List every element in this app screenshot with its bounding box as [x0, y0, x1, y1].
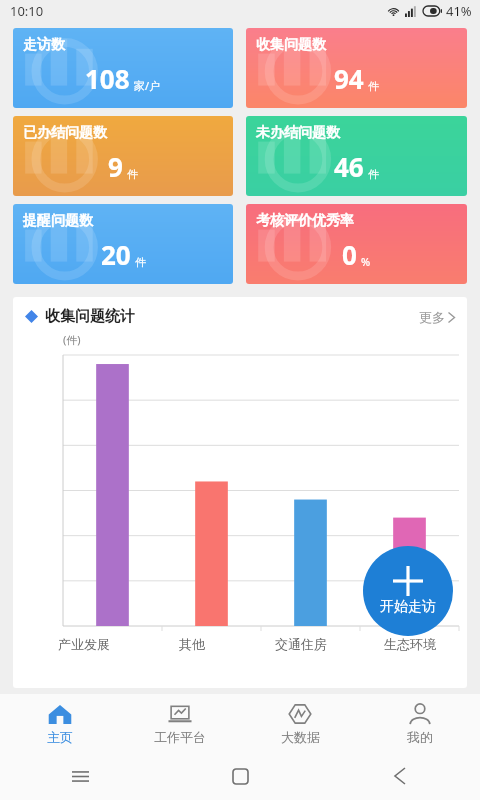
staticText: 产业发展	[58, 636, 110, 652]
staticText: 走访数	[23, 36, 65, 54]
button[interactable]: 我的	[360, 694, 480, 752]
staticText: 46	[334, 149, 364, 184]
staticText: 开始走访	[380, 598, 436, 616]
button[interactable]: Menu	[0, 752, 160, 800]
button[interactable]: 未办结问题数	[246, 116, 467, 196]
button[interactable]: 走访数	[13, 28, 233, 108]
staticText: 0	[342, 237, 357, 272]
staticText: 大数据	[281, 729, 320, 745]
staticText: 10:10	[10, 2, 44, 20]
button[interactable]: 提醒问题数	[13, 204, 233, 284]
staticText: 件	[368, 79, 379, 93]
button[interactable]: Home	[160, 752, 320, 800]
staticText: 提醒问题数	[23, 212, 93, 230]
staticText: 件	[368, 167, 379, 181]
button[interactable]: 开始走访	[363, 546, 453, 636]
staticText: 收集问题数	[256, 36, 326, 54]
staticText: 考核评价优秀率	[256, 212, 354, 230]
staticText: 生态环境	[384, 636, 436, 652]
staticText: (件)	[63, 332, 81, 347]
button[interactable]: 已办结问题数	[13, 116, 233, 196]
staticText: 家/户	[134, 78, 161, 93]
button[interactable]: 收集问题数	[246, 28, 467, 108]
staticText: 更多	[419, 309, 445, 325]
staticText: 交通住房	[275, 636, 327, 652]
button[interactable]: Back	[320, 752, 480, 800]
staticText: 20	[101, 237, 131, 272]
staticText: 41%	[446, 2, 472, 20]
button[interactable]: 主页	[0, 694, 120, 752]
staticText: 收集问题统计	[45, 307, 135, 326]
staticText: 我的	[407, 729, 433, 745]
button[interactable]: 考核评价优秀率	[246, 204, 467, 284]
staticText: 其他	[179, 636, 205, 652]
staticText: 9	[108, 149, 123, 184]
staticText: 94	[334, 61, 364, 96]
button[interactable]: 大数据	[240, 694, 360, 752]
staticText: 工作平台	[154, 729, 206, 745]
staticText: 未办结问题数	[256, 124, 340, 142]
staticText: 主页	[47, 729, 73, 745]
button[interactable]: 更多	[419, 309, 455, 325]
staticText: 件	[135, 255, 146, 269]
staticText: 件	[127, 167, 138, 181]
button[interactable]: 工作平台	[120, 694, 240, 752]
staticText: 108	[85, 61, 130, 96]
staticText: 已办结问题数	[23, 124, 107, 142]
staticText: %	[361, 254, 371, 269]
